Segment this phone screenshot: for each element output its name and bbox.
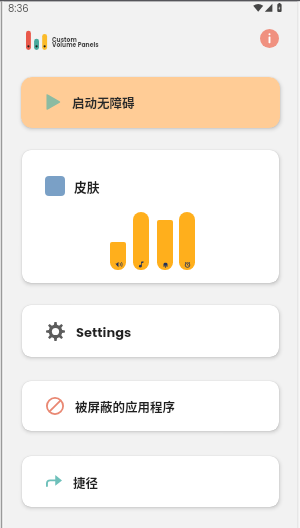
button[interactable]: 皮肤 bbox=[22, 150, 279, 283]
staticText: Custom bbox=[52, 36, 77, 44]
button[interactable]: 被屏蔽的应用程序 bbox=[22, 381, 279, 431]
button[interactable]: 启动无障碍 bbox=[21, 77, 280, 128]
staticText: 8:36 bbox=[8, 1, 29, 15]
button[interactable]: 捷径 bbox=[22, 456, 279, 507]
staticText: Volume Panels bbox=[52, 41, 99, 49]
staticText: 启动无障碍 bbox=[72, 93, 135, 111]
staticText: 皮肤 bbox=[74, 177, 100, 196]
staticText: Settings bbox=[76, 323, 132, 341]
button[interactable]: Settings bbox=[22, 305, 279, 357]
staticText: 捷径 bbox=[73, 473, 99, 491]
button[interactable]: Info bbox=[260, 29, 279, 48]
staticText: 被屏蔽的应用程序 bbox=[75, 397, 176, 415]
